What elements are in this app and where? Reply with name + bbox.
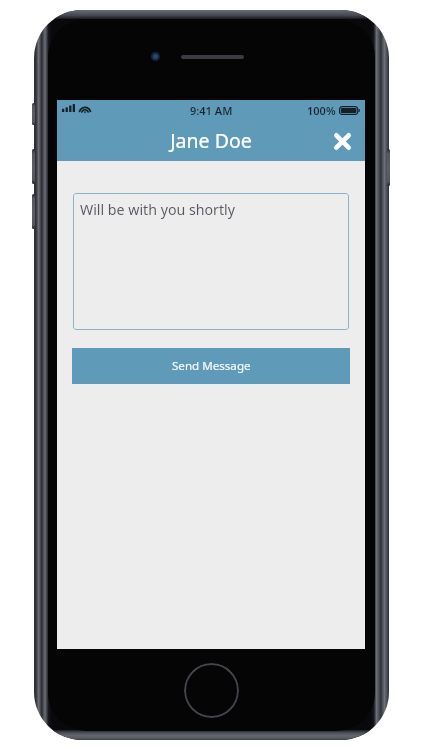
button[interactable]: Send Message	[72, 348, 350, 384]
other: Home	[184, 663, 239, 718]
staticText: Jane Doe	[170, 127, 252, 154]
staticText: Will be with you shortly	[80, 200, 235, 219]
staticText: 9:41 AM	[190, 103, 233, 118]
button[interactable]: Will be with you shortly	[73, 193, 349, 330]
staticText: 100%	[307, 103, 336, 118]
staticText: Send Message	[172, 358, 251, 374]
button[interactable]: Close	[325, 121, 365, 161]
